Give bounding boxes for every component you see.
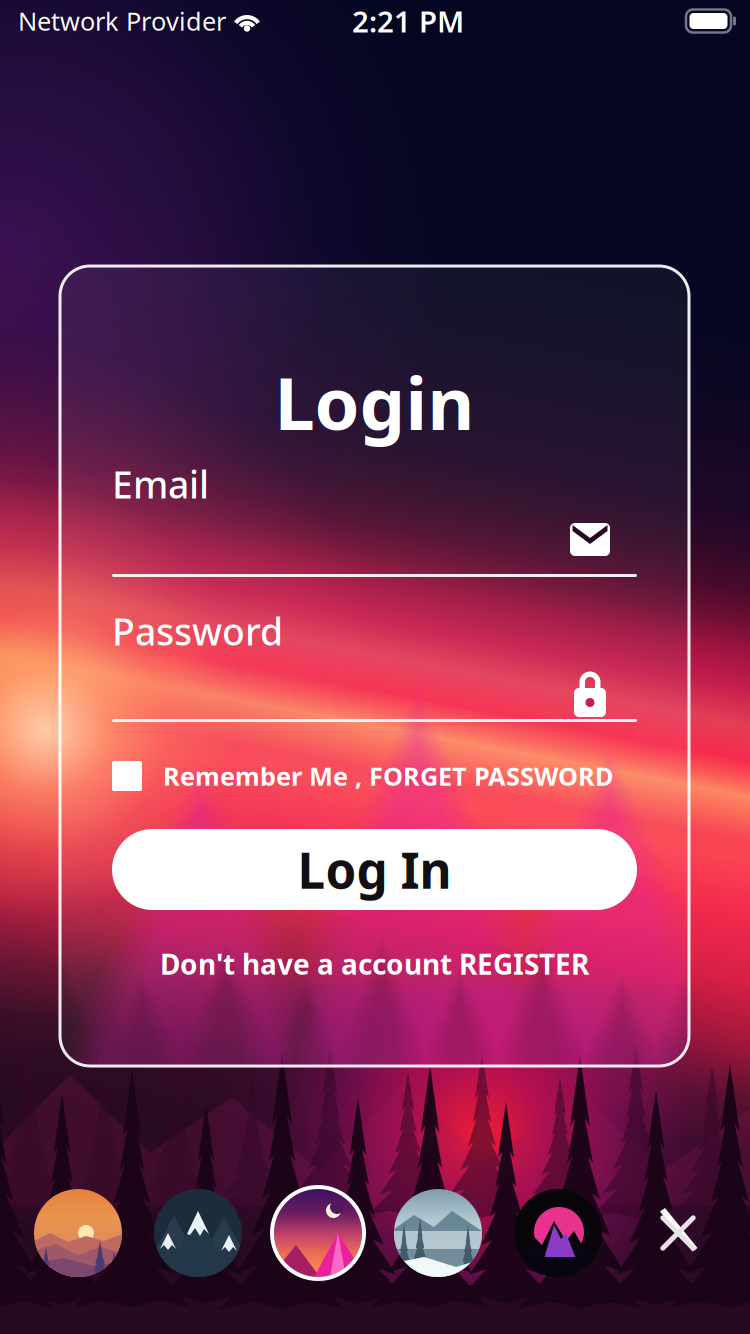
button[interactable]: Peaks wallpaper [154,1189,242,1277]
button[interactable]: Remember Me , FORGET PASSWORD [112,754,617,798]
staticText: Password [112,606,283,656]
staticText: Remember Me , FORGET PASSWORD [163,759,614,793]
staticText: Network Provider [18,4,226,38]
staticText: 2:21 PM [352,1,464,40]
button[interactable]: Log In [112,829,637,910]
button[interactable]: Night wallpaper, selected [274,1189,362,1277]
staticText: Email [112,459,209,509]
button[interactable]: Mist wallpaper [394,1189,482,1277]
staticText: Log In [297,837,451,902]
button[interactable]: Don't have a account REGISTER [60,942,689,986]
staticText: Don't have a account REGISTER [160,945,589,983]
button[interactable]: Close [634,1189,722,1277]
button[interactable]: Dark wallpaper [514,1189,602,1277]
button[interactable]: Sunset wallpaper [34,1189,122,1277]
staticText: Login [274,354,474,450]
